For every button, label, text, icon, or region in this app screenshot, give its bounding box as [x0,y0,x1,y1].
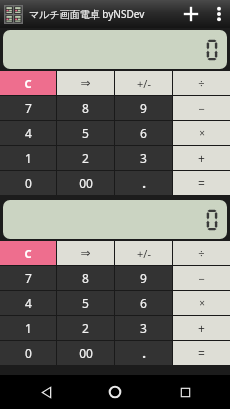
staticText: 0 [25,175,32,191]
button[interactable]: ⇒ [57,241,114,265]
staticText: 7 [25,270,32,286]
staticText: 9 [140,270,147,286]
staticText: × [199,296,205,310]
staticText: 0 [25,345,32,361]
staticText: . [142,174,146,192]
button[interactable]: + [173,146,230,170]
staticText: 1 [25,320,32,336]
staticText: ÷ [198,76,205,91]
staticText: . [142,344,146,362]
staticText: C [24,246,32,261]
button[interactable]: = [173,341,230,365]
button[interactable]: 8 [57,96,114,120]
staticText: +/- [137,246,151,261]
button[interactable]: . [115,171,172,195]
button[interactable]: 4 [0,121,56,145]
staticText: 6 [140,295,147,311]
staticText: 5 [82,295,89,311]
button[interactable]: ⇒ [57,71,114,95]
button[interactable]: 2 [57,146,114,170]
staticText: 5 [82,125,89,141]
button[interactable]: 9 [115,96,172,120]
staticText: 2 [82,150,89,166]
staticText: 1 [25,150,32,166]
staticText: ⇒ [80,246,91,260]
button[interactable]: 7 [0,96,56,120]
staticText: 8 [82,100,89,116]
button[interactable]: Recents [161,375,209,409]
button[interactable]: C [0,71,56,95]
button[interactable]: − [173,266,230,290]
button[interactable]: C [0,241,56,265]
button[interactable]: ÷ [173,241,230,265]
button[interactable]: . [115,341,172,365]
button[interactable]: +/- [115,71,172,95]
button[interactable]: 0 [0,171,56,195]
staticText: +/- [137,76,151,91]
staticText: 00 [79,345,93,361]
button[interactable]: 2 [57,316,114,340]
staticText: 2 [82,320,89,336]
staticText: × [199,126,205,140]
button[interactable]: Add calculator [174,0,208,28]
button[interactable]: + [173,316,230,340]
staticText: 9 [140,100,147,116]
button[interactable]: +/- [115,241,172,265]
button[interactable]: × [173,121,230,145]
staticText: 00 [79,175,93,191]
button[interactable]: 0 [0,341,56,365]
button[interactable]: 5 [57,121,114,145]
button[interactable]: Back [22,375,70,409]
button[interactable]: × [173,291,230,315]
staticText: + [198,150,205,166]
staticText: 8 [82,270,89,286]
button[interactable]: 5 [57,291,114,315]
staticText: 4 [25,125,32,141]
staticText: 3 [140,150,147,166]
button[interactable]: 3 [115,146,172,170]
staticText: + [198,320,205,336]
button[interactable]: 7 [0,266,56,290]
button[interactable]: 6 [115,291,172,315]
button[interactable]: 00 [57,171,114,195]
button[interactable]: − [173,96,230,120]
button[interactable] [3,200,227,239]
button[interactable]: 8 [57,266,114,290]
staticText: = [198,175,205,191]
staticText: 4 [25,295,32,311]
button[interactable]: 3 [115,316,172,340]
button[interactable]: 00 [57,341,114,365]
staticText: 7 [25,100,32,116]
staticText: − [198,271,205,286]
staticText: ⇒ [80,76,91,90]
button[interactable]: = [173,171,230,195]
button[interactable] [3,30,227,69]
button[interactable]: 1 [0,146,56,170]
button[interactable]: ÷ [173,71,230,95]
staticText: 6 [140,125,147,141]
staticText: C [24,76,32,91]
staticText: 3 [140,320,147,336]
button[interactable]: 1 [0,316,56,340]
staticText: マルチ画面電卓 byNSDev [29,7,145,21]
button[interactable]: Home [91,375,139,409]
staticText: − [198,101,205,116]
button[interactable]: 6 [115,121,172,145]
staticText: = [198,345,205,361]
staticText: ÷ [198,246,205,261]
button[interactable]: 9 [115,266,172,290]
button[interactable]: 4 [0,291,56,315]
button[interactable]: More options [208,0,230,28]
